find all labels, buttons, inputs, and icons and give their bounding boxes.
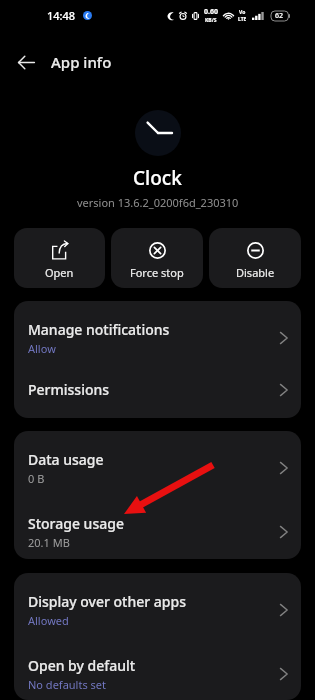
staticText: Disable bbox=[236, 265, 275, 280]
staticText: Vo bbox=[239, 9, 246, 16]
staticText: Allow bbox=[28, 341, 56, 356]
staticText: Clock bbox=[133, 165, 182, 191]
staticText: 62 bbox=[275, 11, 284, 21]
button[interactable]: Display over other apps bbox=[14, 573, 301, 637]
button[interactable]: Open by default bbox=[14, 637, 301, 700]
staticText: No defaults set bbox=[28, 677, 106, 692]
button[interactable]: Manage notifications bbox=[14, 301, 301, 365]
staticText: Open bbox=[45, 265, 74, 280]
staticText: Force stop bbox=[130, 265, 184, 280]
staticText: 0 B bbox=[28, 471, 45, 486]
button[interactable]: Force stop bbox=[111, 228, 203, 288]
button[interactable]: Open bbox=[14, 228, 105, 288]
staticText: Allowed bbox=[28, 613, 69, 628]
button[interactable]: Back bbox=[10, 46, 42, 78]
staticText: 0.60 bbox=[204, 7, 218, 17]
button[interactable]: Disable bbox=[209, 228, 301, 288]
staticText: Data usage bbox=[28, 450, 104, 469]
staticText: App info bbox=[51, 52, 112, 72]
staticText: 14:48 bbox=[47, 8, 76, 23]
staticText: KB/S bbox=[205, 17, 217, 24]
staticText: Display over other apps bbox=[28, 592, 187, 611]
button[interactable]: Permissions bbox=[14, 365, 301, 418]
staticText: LTE bbox=[238, 16, 247, 23]
staticText: Permissions bbox=[28, 380, 110, 399]
staticText: Storage usage bbox=[28, 514, 124, 533]
button[interactable]: Storage usage bbox=[14, 495, 301, 559]
staticText: Manage notifications bbox=[28, 320, 170, 339]
staticText: 20.1 MB bbox=[28, 535, 70, 550]
staticText: Open by default bbox=[28, 656, 136, 675]
staticText: version 13.6.2_0200f6d_230310 bbox=[77, 195, 239, 210]
button[interactable]: Data usage bbox=[14, 431, 301, 495]
